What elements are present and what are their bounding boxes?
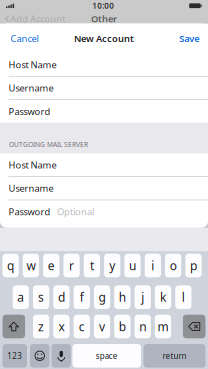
button[interactable]: j [135, 285, 151, 309]
button[interactable]: c [74, 315, 90, 338]
staticText: h [119, 289, 126, 305]
button[interactable]: r [63, 254, 80, 277]
staticText: v [99, 318, 105, 334]
staticText: o [170, 257, 177, 273]
button[interactable]: Delete [183, 315, 205, 338]
button[interactable]: Dictate [51, 344, 71, 368]
button[interactable]: k [155, 285, 171, 309]
staticText: return [162, 350, 186, 361]
staticText: Password [9, 205, 51, 218]
button[interactable]: 123 [2, 344, 27, 368]
button[interactable]: Username [0, 177, 208, 200]
staticText: b [119, 318, 126, 334]
button[interactable]: Shift [2, 315, 25, 338]
staticText: 123 [7, 350, 22, 361]
button[interactable]: p [185, 254, 202, 277]
staticText: i [151, 257, 154, 273]
staticText: m [157, 318, 168, 334]
button[interactable]: Username [0, 77, 208, 99]
button[interactable]: w [23, 254, 39, 277]
staticText: w [26, 257, 35, 273]
staticText: Host Name [9, 159, 57, 171]
staticText: Other [91, 13, 117, 25]
staticText: Add Account [10, 13, 65, 25]
staticText: 10:00 [92, 0, 114, 11]
staticText: f [80, 289, 84, 305]
button[interactable]: l [175, 285, 191, 309]
button[interactable]: Host Name [0, 153, 208, 176]
button[interactable]: Emoji [30, 344, 49, 368]
staticText: Cancel [10, 32, 38, 45]
staticText: u [129, 257, 136, 273]
staticText: l [182, 289, 185, 305]
staticText: y [109, 257, 115, 273]
staticText: d [58, 289, 65, 305]
staticText: Optional [57, 205, 94, 218]
button[interactable]: y [104, 254, 120, 277]
staticText: Username [9, 82, 54, 94]
button[interactable]: o [165, 254, 181, 277]
staticText: q [7, 257, 14, 273]
button[interactable]: x [53, 315, 69, 338]
button[interactable]: Host Name [0, 53, 208, 76]
staticText: k [160, 289, 166, 305]
button[interactable]: q [2, 254, 19, 277]
button[interactable]: return [143, 344, 205, 368]
staticText: Password [9, 105, 51, 118]
button[interactable]: Password [0, 200, 208, 223]
button[interactable]: e [43, 254, 59, 277]
button[interactable]: m [155, 315, 171, 338]
staticText: x [58, 318, 64, 334]
button[interactable]: space [72, 344, 141, 368]
button[interactable]: b [114, 315, 130, 338]
button[interactable]: Password [0, 100, 208, 123]
button[interactable]: Save [171, 24, 208, 53]
staticText: s [38, 289, 44, 305]
staticText: New Account [74, 32, 134, 45]
staticText: p [190, 257, 197, 273]
button[interactable]: s [33, 285, 49, 309]
staticText: Username [9, 182, 54, 194]
button[interactable]: h [114, 285, 130, 309]
button[interactable]: a [13, 285, 29, 309]
button[interactable]: v [94, 315, 110, 338]
button[interactable]: n [135, 315, 151, 338]
staticText: g [98, 289, 105, 305]
staticText: t [90, 257, 94, 273]
button[interactable]: t [84, 254, 100, 277]
staticText: n [139, 318, 146, 334]
staticText: Host Name [9, 58, 57, 71]
staticText: Save [179, 32, 199, 45]
staticText: j [141, 289, 144, 305]
staticText: a [17, 289, 24, 305]
button[interactable]: g [94, 285, 110, 309]
button[interactable]: z [33, 315, 49, 338]
button[interactable]: i [145, 254, 161, 277]
button[interactable]: f [74, 285, 90, 309]
staticText: c [79, 318, 85, 334]
button[interactable]: u [124, 254, 141, 277]
staticText: e [48, 257, 55, 273]
button[interactable]: d [53, 285, 69, 309]
staticText: space [96, 350, 118, 361]
button[interactable]: Cancel [0, 24, 46, 53]
staticText: r [69, 257, 74, 273]
staticText: OUTGOING MAIL SERVER [9, 140, 88, 149]
staticText: z [38, 318, 44, 334]
